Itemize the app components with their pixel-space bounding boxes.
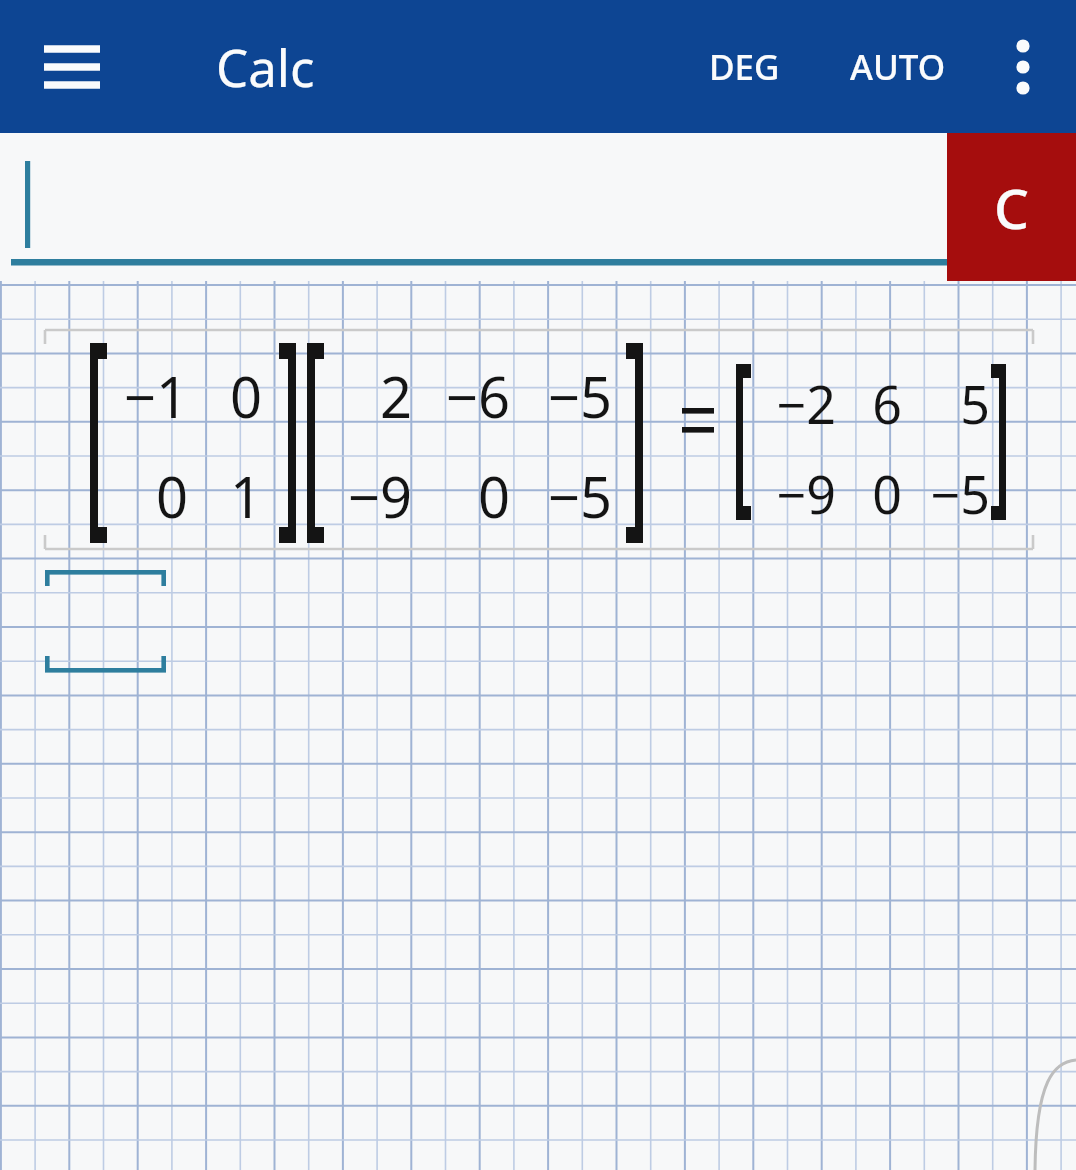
staticText: −2 [776,368,836,439]
staticText: −1 [123,358,188,434]
staticText: 5 [960,368,990,439]
staticText: −6 [445,358,510,434]
button[interactable]: DEG [695,29,794,105]
staticText: −5 [547,458,612,534]
button[interactable]: AUTO [836,29,960,105]
staticText: −9 [776,458,836,529]
staticText: 1 [229,458,262,534]
button[interactable] [0,133,947,281]
button[interactable]: C [947,133,1076,281]
staticText: −5 [930,458,990,529]
staticText: 0 [229,358,262,434]
staticText: 2 [379,358,412,434]
staticText: 0 [477,458,510,534]
staticText: 0 [872,458,902,529]
staticText: C [994,170,1029,245]
staticText: 6 [872,368,902,439]
staticText: AUTO [850,43,946,91]
staticText: −5 [547,358,612,434]
button[interactable]: Open navigation menu [30,25,114,109]
staticText: Calc [216,32,315,101]
staticText: −9 [347,458,412,534]
staticText: DEG [709,43,780,91]
staticText: 0 [155,458,188,534]
button[interactable]: More options [988,32,1058,102]
